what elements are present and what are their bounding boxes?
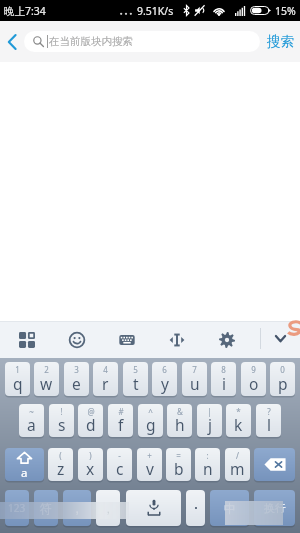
button[interactable]: 中: [210, 490, 249, 526]
button[interactable]: 7: [182, 362, 207, 396]
staticText: ): [89, 450, 92, 461]
staticText: !: [60, 406, 63, 417]
button[interactable]: :: [195, 448, 220, 481]
staticText: k: [234, 414, 243, 435]
staticText: w: [40, 373, 53, 394]
staticText: 6: [162, 364, 167, 375]
staticText: 中: [224, 501, 236, 516]
staticText: ，: [71, 501, 83, 516]
button[interactable]: [126, 490, 181, 526]
staticText: e: [72, 373, 81, 394]
button[interactable]: =: [166, 448, 191, 481]
staticText: a: [27, 414, 36, 435]
staticText: i: [222, 373, 226, 394]
staticText: s: [58, 414, 66, 435]
staticText: 符: [40, 501, 52, 516]
button[interactable]: +: [137, 448, 162, 481]
button[interactable]: ): [78, 448, 103, 481]
staticText: #: [118, 406, 124, 417]
staticText: +: [147, 450, 152, 461]
staticText: 晚上7:34: [4, 4, 46, 18]
staticText: (: [59, 450, 62, 461]
button[interactable]: cursor: [155, 321, 199, 358]
button[interactable]: 8: [211, 362, 236, 396]
button[interactable]: settings: [205, 321, 249, 358]
button[interactable]: [254, 448, 295, 481]
staticText: g: [146, 414, 156, 435]
staticText: f: [118, 414, 124, 435]
staticText: *: [236, 406, 241, 417]
button[interactable]: #: [108, 404, 133, 437]
button[interactable]: 符: [34, 490, 58, 526]
staticText: 2: [44, 364, 49, 375]
staticText: b: [174, 458, 184, 479]
button[interactable]: 9: [241, 362, 266, 396]
button[interactable]: [186, 490, 205, 526]
staticText: @: [87, 406, 95, 417]
button[interactable]: Back: [0, 21, 24, 62]
staticText: m: [230, 458, 245, 479]
button[interactable]: 3: [64, 362, 89, 396]
button[interactable]: !: [49, 404, 74, 437]
staticText: u: [190, 373, 200, 394]
button[interactable]: a: [5, 448, 44, 481]
staticText: :: [206, 450, 209, 461]
staticText: =: [176, 450, 181, 461]
staticText: h: [175, 414, 185, 435]
button[interactable]: 1: [5, 362, 30, 396]
staticText: 15%: [275, 4, 296, 18]
staticText: ?: [267, 406, 271, 417]
staticText: 123: [8, 501, 26, 515]
button[interactable]: @: [78, 404, 103, 437]
button[interactable]: Hide keyboard: [264, 321, 296, 358]
staticText: 7: [192, 364, 197, 375]
staticText: n: [203, 458, 213, 479]
button[interactable]: ~: [19, 404, 44, 437]
button[interactable]: *: [226, 404, 251, 437]
button[interactable]: -: [107, 448, 132, 481]
button[interactable]: /: [225, 448, 250, 481]
button[interactable]: 4: [93, 362, 118, 396]
staticText: 搜索: [267, 33, 294, 50]
staticText: l: [267, 414, 271, 435]
staticText: 换行: [264, 501, 286, 515]
button[interactable]: |: [197, 404, 222, 437]
button[interactable]: &: [167, 404, 192, 437]
staticText: c: [116, 458, 124, 479]
button[interactable]: 换行: [254, 490, 295, 526]
button[interactable]: 2: [34, 362, 59, 396]
staticText: 9: [251, 364, 256, 375]
staticText: &: [177, 406, 183, 417]
button[interactable]: ?: [256, 404, 281, 437]
staticText: q: [13, 373, 23, 394]
staticText: 在当前版块内搜索: [49, 35, 133, 48]
button[interactable]: apps: [5, 321, 49, 358]
staticText: t: [133, 373, 139, 394]
button[interactable]: 0: [270, 362, 295, 396]
staticText: |: [207, 406, 212, 417]
button[interactable]: keyboard: [105, 321, 149, 358]
button[interactable]: 123: [5, 490, 29, 526]
staticText: ^: [148, 406, 153, 417]
button[interactable]: 5: [123, 362, 148, 396]
staticText: o: [249, 373, 259, 394]
button[interactable]: 搜索: [260, 21, 300, 62]
staticText: j: [208, 414, 212, 435]
button[interactable]: 6: [152, 362, 177, 396]
button[interactable]: ，: [96, 490, 120, 526]
staticText: 5: [133, 364, 138, 375]
staticText: 8: [221, 364, 226, 375]
button[interactable]: ^: [138, 404, 163, 437]
staticText: x: [86, 458, 95, 479]
staticText: ~: [29, 406, 34, 417]
staticText: y: [161, 373, 169, 394]
staticText: 4: [103, 364, 108, 375]
button[interactable]: (: [48, 448, 73, 481]
button[interactable]: emoji: [55, 321, 99, 358]
button[interactable]: ，: [63, 490, 91, 526]
staticText: v: [146, 458, 154, 479]
staticText: d: [86, 414, 96, 435]
button[interactable]: 在当前版块内搜索: [24, 31, 260, 52]
staticText: a: [21, 465, 28, 481]
